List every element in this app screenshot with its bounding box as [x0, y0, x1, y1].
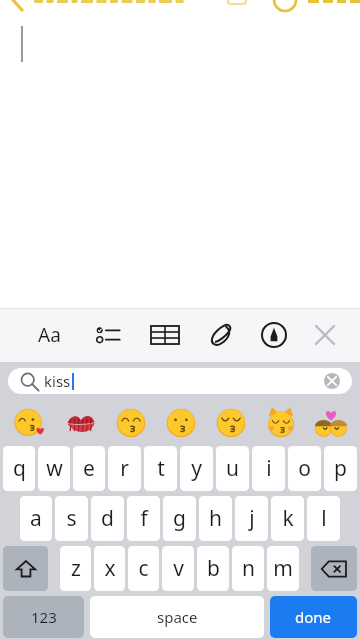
button[interactable]: k [271, 496, 304, 541]
button[interactable]: c [128, 546, 159, 591]
staticText: 123 [31, 607, 57, 627]
staticText: m [273, 554, 293, 583]
button[interactable]: a [20, 496, 52, 541]
staticText: r [120, 454, 129, 483]
button[interactable]: z [60, 546, 91, 591]
button[interactable]: v [162, 546, 194, 591]
staticText: q [13, 454, 26, 483]
staticText: c [138, 554, 149, 583]
button[interactable]: x [94, 546, 125, 591]
staticText: k [282, 504, 294, 533]
staticText: h [209, 504, 222, 533]
button[interactable]: q [3, 446, 35, 491]
button[interactable]: Clear search [320, 369, 344, 393]
button[interactable]: done [270, 596, 357, 638]
button[interactable]: Attach [199, 313, 243, 357]
button[interactable]: 123 [3, 596, 84, 638]
button[interactable]: e [73, 446, 105, 491]
button[interactable]: r [108, 446, 141, 491]
button[interactable]: b [197, 546, 229, 591]
button[interactable]: Kiss emoji [55, 400, 106, 446]
staticText: x [104, 554, 116, 583]
button[interactable]: Markup [252, 313, 296, 357]
button[interactable]: y [180, 446, 213, 491]
button[interactable]: Text format [27, 313, 71, 357]
button[interactable]: Compose [226, 0, 248, 7]
button[interactable]: s [55, 496, 88, 541]
staticText: z [71, 554, 81, 583]
staticText: g [173, 504, 186, 533]
staticText: w [46, 454, 63, 483]
staticText: l [321, 504, 327, 533]
staticText: y [191, 454, 202, 483]
button[interactable]: f [127, 496, 160, 541]
button[interactable]: p [324, 446, 357, 491]
button[interactable]: Table [143, 313, 187, 357]
button[interactable]: j [235, 496, 268, 541]
staticText: kiss [44, 371, 71, 391]
staticText: o [298, 454, 311, 483]
button[interactable]: kiss [8, 368, 352, 394]
button[interactable]: m [267, 546, 299, 591]
staticText: done [295, 607, 332, 627]
staticText: p [334, 454, 347, 483]
staticText: d [101, 504, 114, 533]
button[interactable]: Done [274, 0, 352, 7]
staticText: v [173, 554, 184, 583]
button[interactable]: Kiss emoji [4, 400, 55, 446]
staticText: a [30, 504, 42, 533]
staticText: n [242, 554, 255, 583]
button[interactable]: g [163, 496, 196, 541]
staticText: space [157, 607, 198, 627]
staticText: b [207, 554, 220, 583]
button[interactable]: space [90, 596, 264, 638]
staticText: s [66, 504, 77, 533]
button[interactable]: i [252, 446, 285, 491]
button[interactable]: d [91, 496, 124, 541]
staticText: Aa [38, 322, 61, 348]
button[interactable]: Kiss emoji [106, 400, 156, 446]
button[interactable]: Kiss emoji [156, 400, 206, 446]
button[interactable]: Kiss emoji [206, 400, 256, 446]
button[interactable]: Kiss emoji [306, 400, 356, 446]
staticText: f [140, 504, 148, 533]
button[interactable]: Shift [3, 546, 48, 591]
staticText: t [157, 454, 165, 483]
button[interactable]: l [307, 496, 340, 541]
button[interactable]: Checklist [86, 313, 130, 357]
staticText: u [226, 454, 239, 483]
button[interactable]: t [144, 446, 177, 491]
staticText: i [266, 454, 272, 483]
button[interactable]: o [288, 446, 321, 491]
button[interactable]: Kiss emoji [256, 400, 306, 446]
button[interactable]: h [199, 496, 232, 541]
button[interactable]: Back to Fly, Songs, Notes [8, 0, 226, 7]
button[interactable]: u [216, 446, 249, 491]
button[interactable]: w [38, 446, 70, 491]
button[interactable]: n [232, 546, 264, 591]
staticText: e [83, 454, 95, 483]
button[interactable]: Close keyboard [303, 313, 347, 357]
staticText: j [249, 504, 255, 533]
button[interactable]: Backspace [311, 546, 357, 591]
